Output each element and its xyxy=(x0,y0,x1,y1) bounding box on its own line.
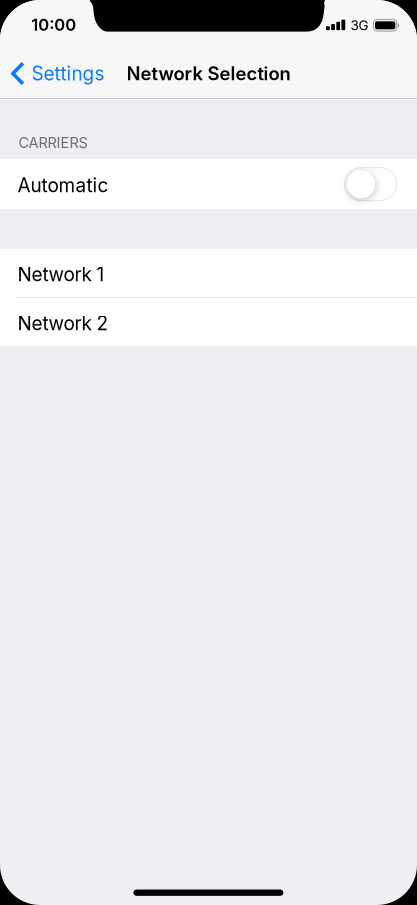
staticText: 3G xyxy=(350,17,368,34)
staticText: 10:00 xyxy=(31,15,76,35)
button[interactable]: Network 2 xyxy=(0,298,417,346)
button[interactable]: Automatic carrier selection xyxy=(344,168,396,201)
staticText: Settings xyxy=(32,62,105,85)
button[interactable]: Settings xyxy=(0,49,115,98)
staticText: Network 1 xyxy=(18,263,105,286)
staticText: Network 2 xyxy=(18,312,109,335)
staticText: Automatic xyxy=(18,174,109,197)
staticText: CARRIERS xyxy=(19,134,88,151)
button[interactable]: Network 1 xyxy=(0,249,417,297)
staticText: Network Selection xyxy=(126,62,290,85)
